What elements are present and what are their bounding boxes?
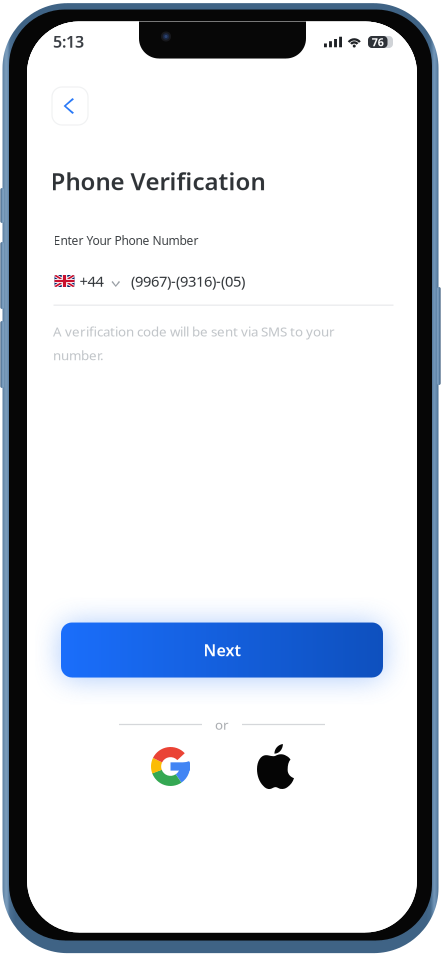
staticText: 76 — [372, 35, 384, 49]
staticText: or — [215, 716, 229, 733]
staticText: +44 — [79, 271, 103, 291]
staticText: A verification code will be sent via SMS… — [53, 322, 335, 364]
staticText: 5:13 — [53, 31, 84, 52]
staticText: Phone Verification — [50, 165, 265, 197]
button[interactable]: Back — [52, 87, 88, 125]
staticText: (9967)-(9316)-(05) — [131, 271, 245, 291]
button[interactable]: Next — [61, 622, 383, 677]
button[interactable]: +44 — [54, 270, 394, 291]
staticText: Enter Your Phone Number — [53, 232, 198, 248]
staticText: Next — [203, 639, 240, 661]
button[interactable]: Continue with Google — [143, 739, 198, 793]
button[interactable]: Continue with Apple — [248, 739, 303, 793]
